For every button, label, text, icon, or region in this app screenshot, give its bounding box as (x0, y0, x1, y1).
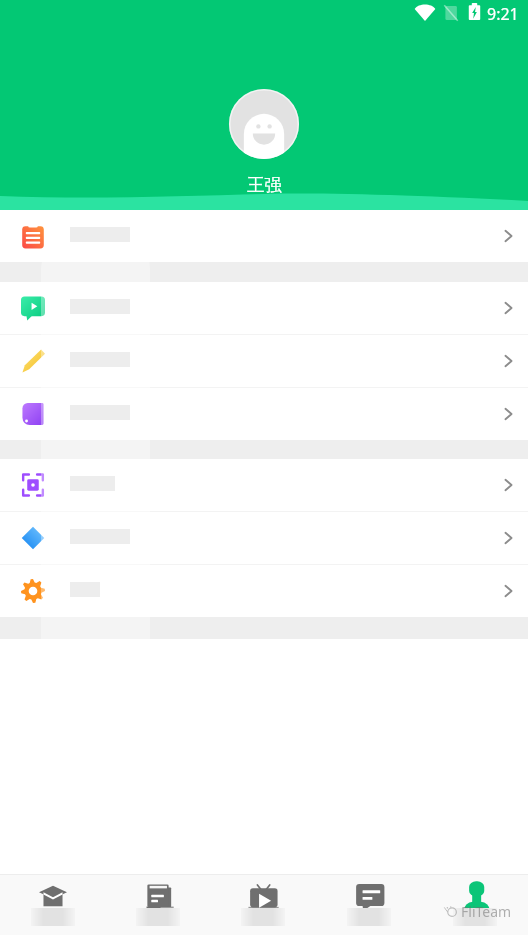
staticText: FliTeam (461, 902, 512, 921)
button[interactable] (0, 335, 528, 387)
button[interactable] (0, 459, 528, 511)
button[interactable] (0, 512, 528, 564)
button[interactable] (0, 565, 528, 617)
button[interactable] (0, 210, 528, 262)
button[interactable]: Courses (0, 875, 105, 935)
button[interactable]: Messages (316, 875, 422, 935)
staticText: 9:21 (487, 3, 519, 25)
button[interactable]: Video (210, 875, 316, 935)
button[interactable] (0, 282, 528, 334)
button[interactable] (0, 388, 528, 440)
button[interactable]: Library (105, 875, 210, 935)
staticText: 王强 (247, 174, 282, 196)
button[interactable]: Profile (422, 875, 528, 935)
